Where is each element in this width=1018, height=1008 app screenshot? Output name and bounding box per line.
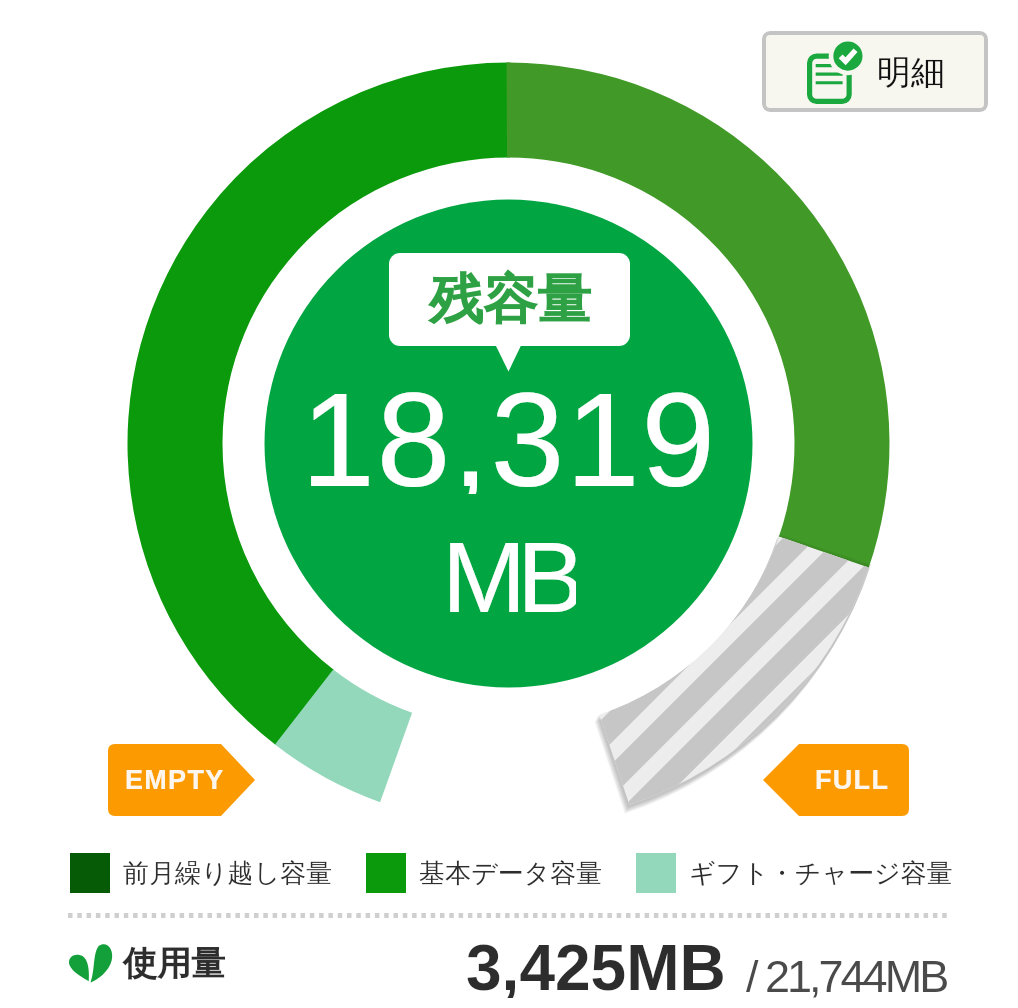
staticText: ギフト・チャージ容量 [689, 857, 953, 890]
staticText: MB [442, 521, 576, 621]
staticText: FULL [815, 765, 890, 795]
staticText: 明細 [877, 51, 945, 94]
staticText: 3,425MB [466, 932, 726, 998]
button[interactable]: Full [763, 744, 909, 816]
staticText: 基本データ容量 [419, 857, 603, 890]
staticText: EMPTY [125, 765, 225, 795]
staticText: 前月繰り越し容量 [123, 857, 333, 890]
button[interactable]: Empty [108, 744, 255, 816]
button[interactable]: 明細 [762, 31, 988, 112]
staticText: 18,319 [301, 366, 717, 494]
staticText: 使用量 [123, 942, 225, 985]
staticText: / 21,744MB [746, 951, 947, 1001]
staticText: 残容量 [429, 266, 591, 334]
